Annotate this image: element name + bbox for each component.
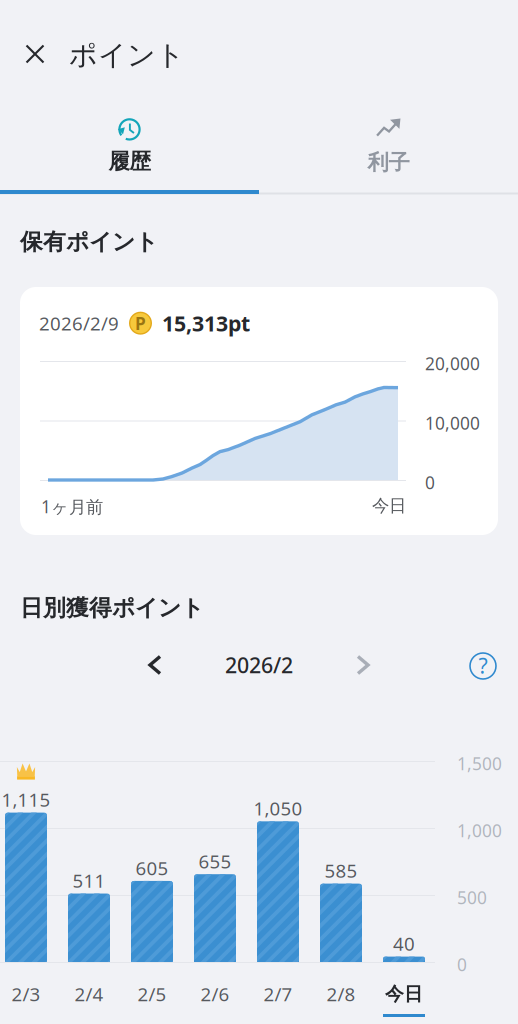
staticText: 1,115 xyxy=(1,787,50,812)
staticText: 1,050 xyxy=(253,796,302,821)
staticText: 500 xyxy=(457,886,487,909)
button[interactable]: 閉じる xyxy=(15,34,55,74)
staticText: 15,313pt xyxy=(162,309,250,337)
staticText: 今日 xyxy=(385,982,423,1005)
staticText: 履歴 xyxy=(108,148,150,175)
staticText: 2026/2 xyxy=(225,651,293,679)
staticText: 利子 xyxy=(367,149,409,176)
button[interactable]: 利子 xyxy=(259,109,518,183)
button[interactable]: 履歴 xyxy=(0,109,259,183)
staticText: 日別獲得ポイント xyxy=(20,594,204,622)
staticText: 2/3 xyxy=(11,982,40,1006)
staticText: 585 xyxy=(324,858,357,883)
staticText: 40 xyxy=(393,931,415,956)
button[interactable]: 次の月 xyxy=(341,643,385,687)
staticText: ポイント xyxy=(69,38,185,72)
staticText: 20,000 xyxy=(425,352,480,375)
button[interactable]: ヘルプ xyxy=(461,644,505,688)
staticText: 2026/2/9 xyxy=(39,311,119,336)
button[interactable]: 前の月 xyxy=(133,643,177,687)
staticText: 1,500 xyxy=(457,752,502,775)
staticText: 655 xyxy=(198,849,231,874)
staticText: P xyxy=(135,312,146,335)
staticText: 2/8 xyxy=(326,982,355,1006)
staticText: 511 xyxy=(72,868,105,893)
staticText: 2/6 xyxy=(200,982,229,1006)
staticText: 1,000 xyxy=(457,819,502,842)
staticText: 今日 xyxy=(372,495,406,516)
staticText: ? xyxy=(478,651,487,680)
staticText: 0 xyxy=(457,953,467,976)
staticText: 保有ポイント xyxy=(20,228,158,256)
staticText: 605 xyxy=(135,855,168,880)
staticText: 10,000 xyxy=(425,411,480,434)
staticText: 2/7 xyxy=(263,982,292,1006)
staticText: 2/4 xyxy=(74,982,103,1006)
staticText: 0 xyxy=(425,471,435,494)
staticText: 1ヶ月前 xyxy=(41,495,103,518)
staticText: 2/5 xyxy=(137,982,166,1006)
